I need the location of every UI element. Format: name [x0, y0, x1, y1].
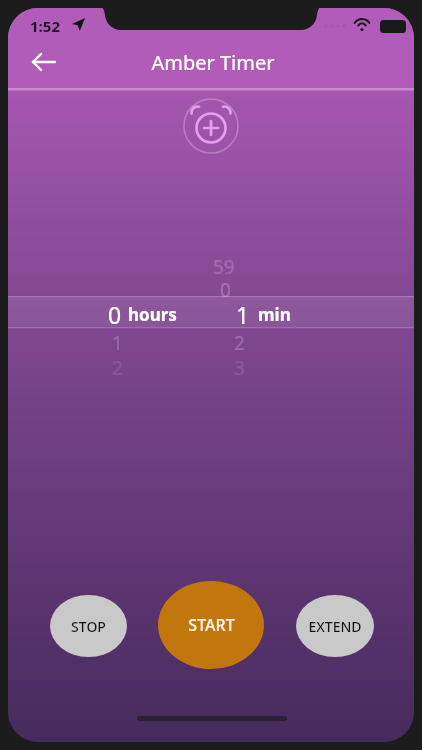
staticText: 1 — [236, 299, 250, 330]
staticText: min — [258, 303, 291, 326]
staticText: 0 — [108, 299, 122, 330]
button[interactable]: EXTEND — [296, 595, 374, 657]
staticText: EXTEND — [308, 617, 362, 636]
button[interactable]: Back — [24, 44, 66, 86]
staticText: 1 — [112, 330, 123, 356]
staticText: 0 — [220, 277, 231, 303]
staticText: Amber Timer — [151, 49, 275, 76]
staticText: hours — [128, 303, 177, 326]
button[interactable]: Hours picker — [20, 240, 200, 380]
staticText: 2 — [112, 355, 123, 381]
staticText: STOP — [71, 617, 106, 636]
staticText: 2 — [234, 330, 245, 356]
button[interactable]: START — [158, 581, 264, 669]
staticText: START — [188, 614, 235, 636]
staticText: 1:52 — [30, 16, 60, 36]
button[interactable]: Minutes picker — [210, 240, 390, 380]
staticText: 59 — [213, 254, 235, 280]
button[interactable]: Add alarm — [183, 98, 239, 154]
button[interactable]: STOP — [50, 595, 127, 657]
staticText: 3 — [234, 355, 245, 381]
